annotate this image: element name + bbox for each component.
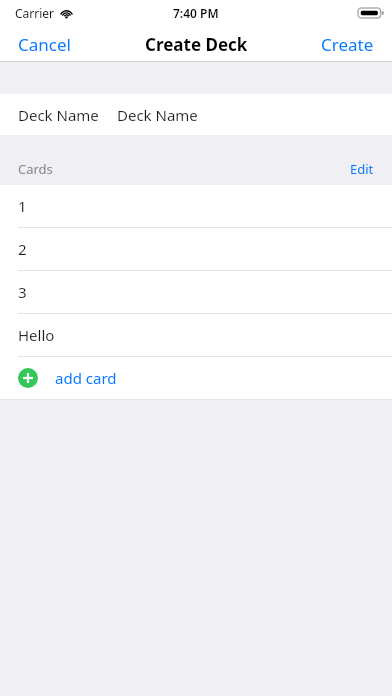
button[interactable]: Cancel: [0, 26, 89, 62]
button[interactable]: Deck Name: [0, 94, 392, 135]
button[interactable]: 1: [0, 185, 392, 227]
staticText: Hello: [18, 325, 55, 345]
staticText: 1: [18, 196, 27, 216]
button[interactable]: Hello: [0, 314, 392, 356]
button[interactable]: 2: [0, 228, 392, 270]
staticText: Cards: [18, 160, 53, 178]
button[interactable]: Edit: [350, 160, 374, 178]
staticText: Create Deck: [145, 33, 248, 56]
button[interactable]: 3: [0, 271, 392, 313]
staticText: Cancel: [18, 33, 71, 56]
staticText: 2: [18, 239, 27, 259]
staticText: Deck Name: [117, 105, 198, 125]
staticText: Create: [321, 33, 374, 56]
staticText: 7:40 PM: [173, 5, 219, 21]
staticText: Deck Name: [18, 105, 99, 125]
button[interactable]: Add card: [0, 357, 392, 399]
staticText: 3: [18, 282, 27, 302]
staticText: Edit: [350, 160, 374, 178]
staticText: Carrier: [15, 5, 55, 21]
button[interactable]: Create: [303, 26, 392, 62]
staticText: add card: [55, 368, 117, 388]
